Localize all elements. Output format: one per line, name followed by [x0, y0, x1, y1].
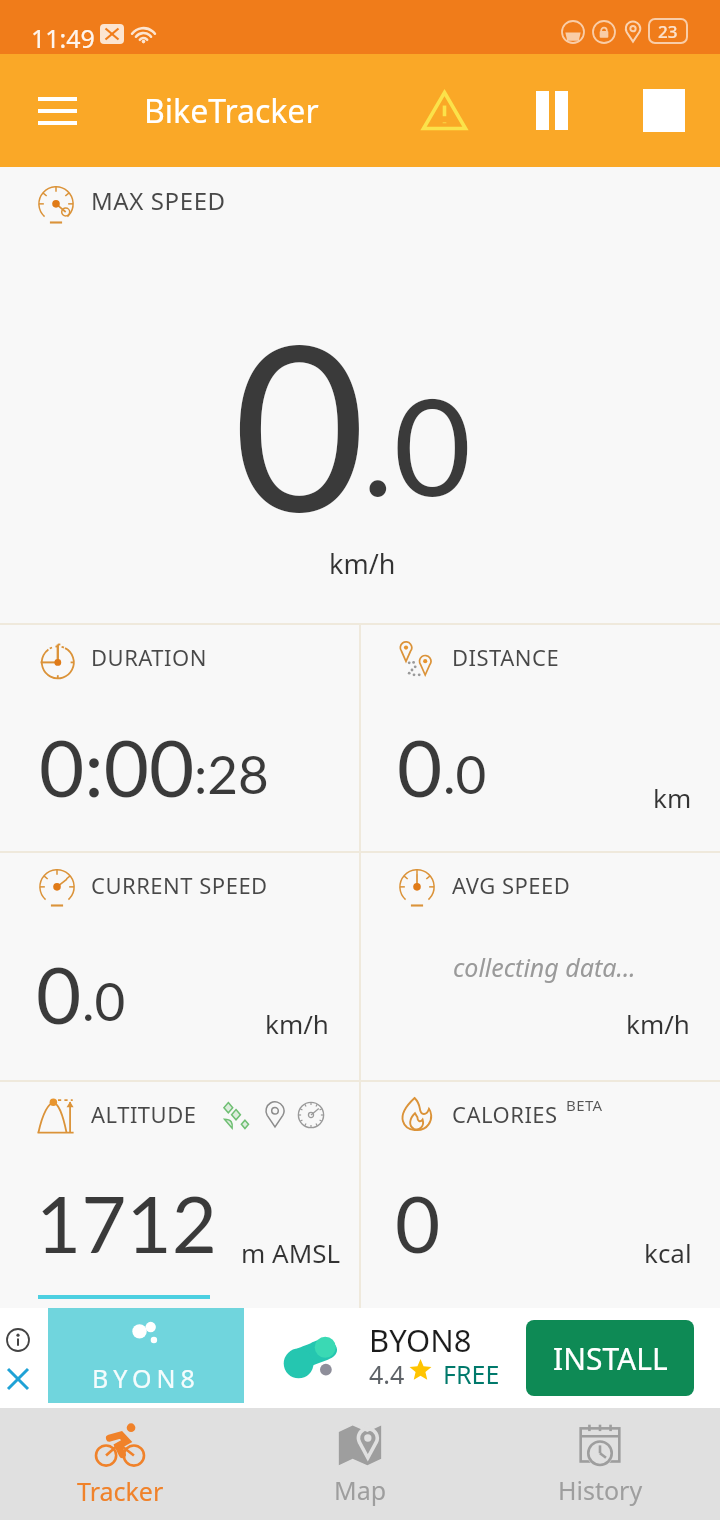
button[interactable]: Ad info	[6, 1328, 30, 1352]
staticText: FREE	[443, 1357, 500, 1391]
staticText: BYON8	[369, 1319, 472, 1361]
staticText: 23	[658, 20, 678, 43]
button[interactable]: Tracker	[0, 1408, 240, 1520]
staticText: History	[558, 1473, 643, 1507]
button[interactable]: ALTITUDE	[0, 1082, 359, 1308]
staticText: 0:00	[39, 720, 195, 814]
staticText: km/h	[329, 545, 396, 582]
staticText: 0	[397, 720, 443, 814]
staticText: ALTITUDE	[91, 1099, 197, 1129]
staticText: INSTALL	[553, 1338, 668, 1379]
staticText: 0	[395, 1176, 441, 1270]
staticText: kcal	[644, 1235, 692, 1270]
staticText: collecting data...	[453, 950, 636, 984]
staticText: BikeTracker	[144, 89, 319, 133]
button[interactable]: Warning	[396, 54, 492, 167]
staticText: km	[653, 780, 692, 815]
button[interactable]: CALORIES	[361, 1082, 720, 1308]
staticText: .0	[443, 742, 487, 806]
staticText: .0	[82, 969, 126, 1033]
staticText: DURATION	[91, 642, 207, 672]
staticText: 4.4	[369, 1357, 405, 1391]
button[interactable]: Close ad	[5, 1366, 31, 1392]
staticText: CURRENT SPEED	[91, 870, 268, 900]
staticText: :28	[194, 742, 269, 806]
staticText: CALORIES	[452, 1099, 558, 1129]
button[interactable]: Map	[240, 1408, 480, 1520]
staticText: Tracker	[77, 1474, 164, 1508]
staticText: DISTANCE	[452, 642, 560, 672]
staticText: 11:49	[31, 21, 95, 55]
button[interactable]: History	[480, 1408, 720, 1520]
button[interactable]: Stop	[616, 54, 712, 167]
button[interactable]: DISTANCE	[361, 625, 720, 853]
staticText: km/h	[265, 1006, 329, 1041]
staticText: 0	[233, 285, 366, 560]
button[interactable]: MAX SPEED	[0, 167, 720, 624]
button[interactable]: AVG SPEED	[361, 853, 720, 1081]
button[interactable]: DURATION	[0, 625, 359, 853]
button[interactable]: CURRENT SPEED	[0, 853, 359, 1081]
staticText: m AMSL	[241, 1235, 341, 1270]
staticText: 0	[36, 947, 82, 1041]
staticText: MAX SPEED	[91, 184, 226, 217]
button[interactable]: Pause	[504, 54, 600, 167]
staticText: BYON8	[92, 1361, 200, 1395]
staticText: BETA	[566, 1095, 603, 1115]
staticText: Map	[334, 1473, 387, 1507]
button[interactable]: Open navigation menu	[19, 54, 95, 167]
staticText: .0	[362, 364, 472, 525]
staticText: 1712	[36, 1176, 217, 1270]
staticText: AVG SPEED	[452, 870, 571, 900]
staticText: km/h	[626, 1006, 690, 1041]
button[interactable]: INSTALL	[526, 1320, 694, 1396]
